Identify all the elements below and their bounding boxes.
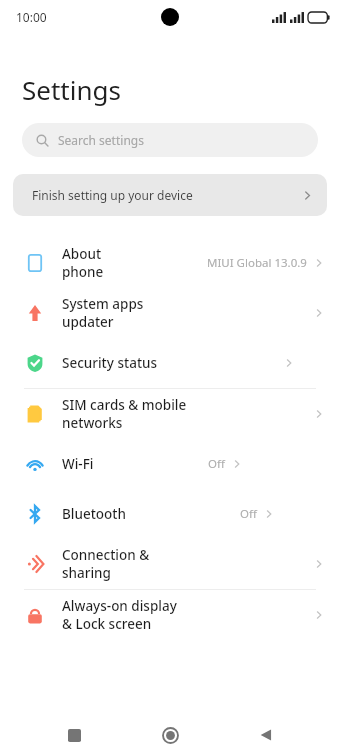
button[interactable]: Always-on display & Lock screen [0,590,340,640]
staticText: About phone [62,245,134,281]
button[interactable]: Search settings [22,123,318,157]
button[interactable]: Back [244,715,288,755]
staticText: Off [208,456,225,472]
staticText: Wi-Fi [62,455,94,473]
staticText: Finish setting up your device [32,187,193,203]
staticText: System apps updater [62,295,188,331]
staticText: Search settings [58,132,144,148]
staticText: Off [240,506,257,522]
button[interactable]: Wi-Fi [0,439,340,489]
button[interactable]: Recents [52,715,96,755]
button[interactable]: Bluetooth [0,489,340,539]
staticText: Always-on display & Lock screen [62,597,188,633]
button[interactable]: Finish setting up your device [13,174,327,216]
button[interactable]: Connection & sharing [0,539,340,589]
button[interactable]: Home [148,715,192,755]
button[interactable]: About phone [0,238,340,288]
staticText: Security status [62,354,158,372]
button[interactable]: Security status [0,338,340,388]
button[interactable]: System apps updater [0,288,340,338]
staticText: Connection & sharing [62,546,188,582]
button[interactable]: SIM cards & mobile networks [0,389,340,439]
staticText: 10:00 [16,9,47,25]
staticText: MIUI Global 13.0.9 [207,255,307,271]
staticText: SIM cards & mobile networks [62,396,188,432]
staticText: Bluetooth [62,505,126,523]
staticText: Settings [22,72,121,107]
